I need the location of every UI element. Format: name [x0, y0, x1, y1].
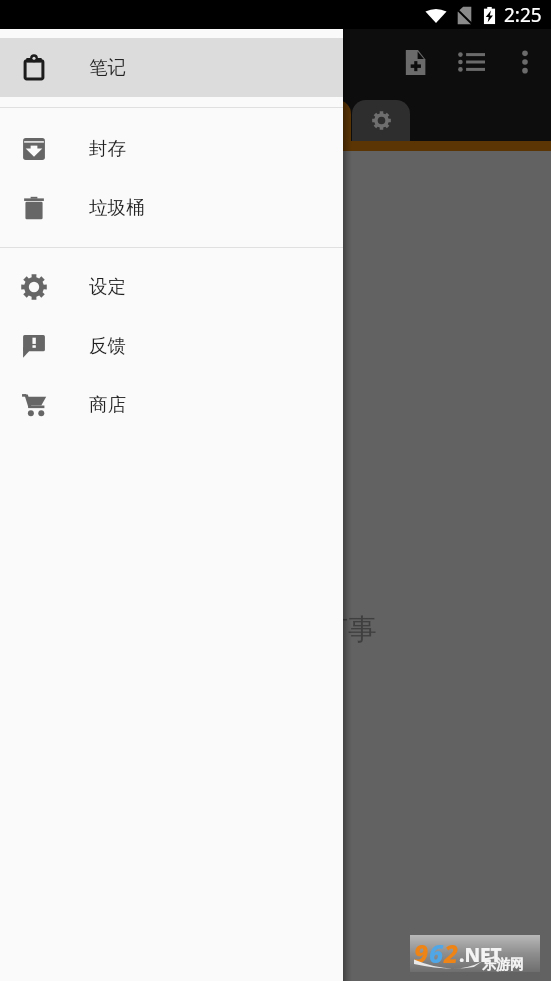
staticText: 2 [444, 936, 459, 970]
button[interactable]: Settings tab [352, 100, 410, 141]
staticText: 目前没有任何事 [174, 611, 377, 648]
staticText: 乐游网 [482, 956, 524, 974]
staticText: 垃圾桶 [89, 196, 145, 219]
staticText: 封存 [89, 137, 126, 160]
button[interactable]: 商店 [0, 375, 343, 434]
button[interactable]: List view [443, 34, 499, 90]
staticText: .NET [459, 942, 502, 968]
button[interactable]: More options [499, 36, 551, 88]
staticText: 设定 [89, 275, 126, 298]
staticText: 反馈 [89, 334, 126, 357]
button[interactable]: New note [387, 34, 443, 90]
button[interactable]: 设定 [0, 257, 343, 316]
staticText: 2:25 [504, 2, 542, 28]
button[interactable]: 垃圾桶 [0, 178, 343, 237]
staticText: 笔记 [89, 56, 126, 79]
button[interactable]: Notes tab [285, 100, 351, 141]
button[interactable]: 笔记 [0, 38, 343, 97]
button[interactable]: 反馈 [0, 316, 343, 375]
staticText: 商店 [89, 393, 126, 416]
staticText: 6 [429, 936, 444, 970]
button[interactable]: 封存 [0, 119, 343, 178]
staticText: 9 [414, 936, 429, 970]
